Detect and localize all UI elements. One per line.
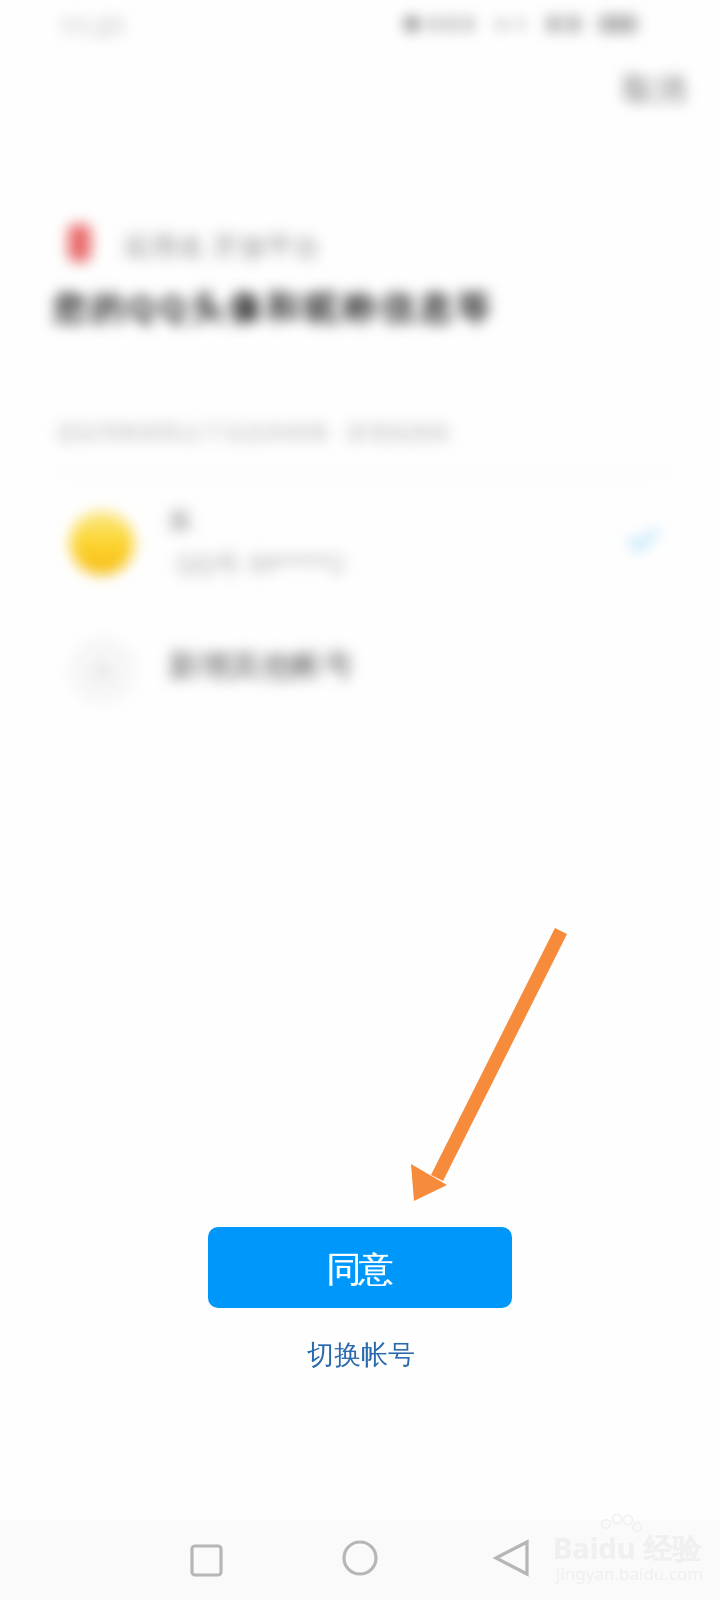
staticText: 您的QQ头像和昵称信息等 [52, 284, 494, 330]
button[interactable]: Back [462, 1512, 562, 1600]
staticText: 该应用将获取以下信息和权限 请谨慎授权 [56, 418, 451, 447]
button[interactable]: Home [310, 1512, 410, 1600]
staticText: 同意 [328, 1247, 392, 1291]
staticText: 应用名 开放平台 [124, 227, 321, 264]
button[interactable]: 切换帐号 [285, 1326, 435, 1384]
staticText: jingyan.baidu.com [556, 1562, 704, 1585]
button[interactable]: 乐 [40, 494, 680, 596]
staticText: 取消 [622, 70, 686, 109]
staticText: 新增其他帐号 [168, 646, 354, 685]
staticText: Baidu 经验 [553, 1528, 702, 1568]
staticText: 切换帐号 [307, 1338, 415, 1372]
button[interactable]: 取消 [614, 62, 694, 117]
button[interactable]: 同意 [208, 1227, 512, 1308]
staticText: 乐 [168, 506, 192, 536]
button[interactable]: Recent apps [157, 1512, 257, 1600]
staticText: QQ号 39****2 [176, 546, 345, 580]
button[interactable]: + [40, 624, 680, 716]
staticText: 11:21 [60, 8, 127, 43]
